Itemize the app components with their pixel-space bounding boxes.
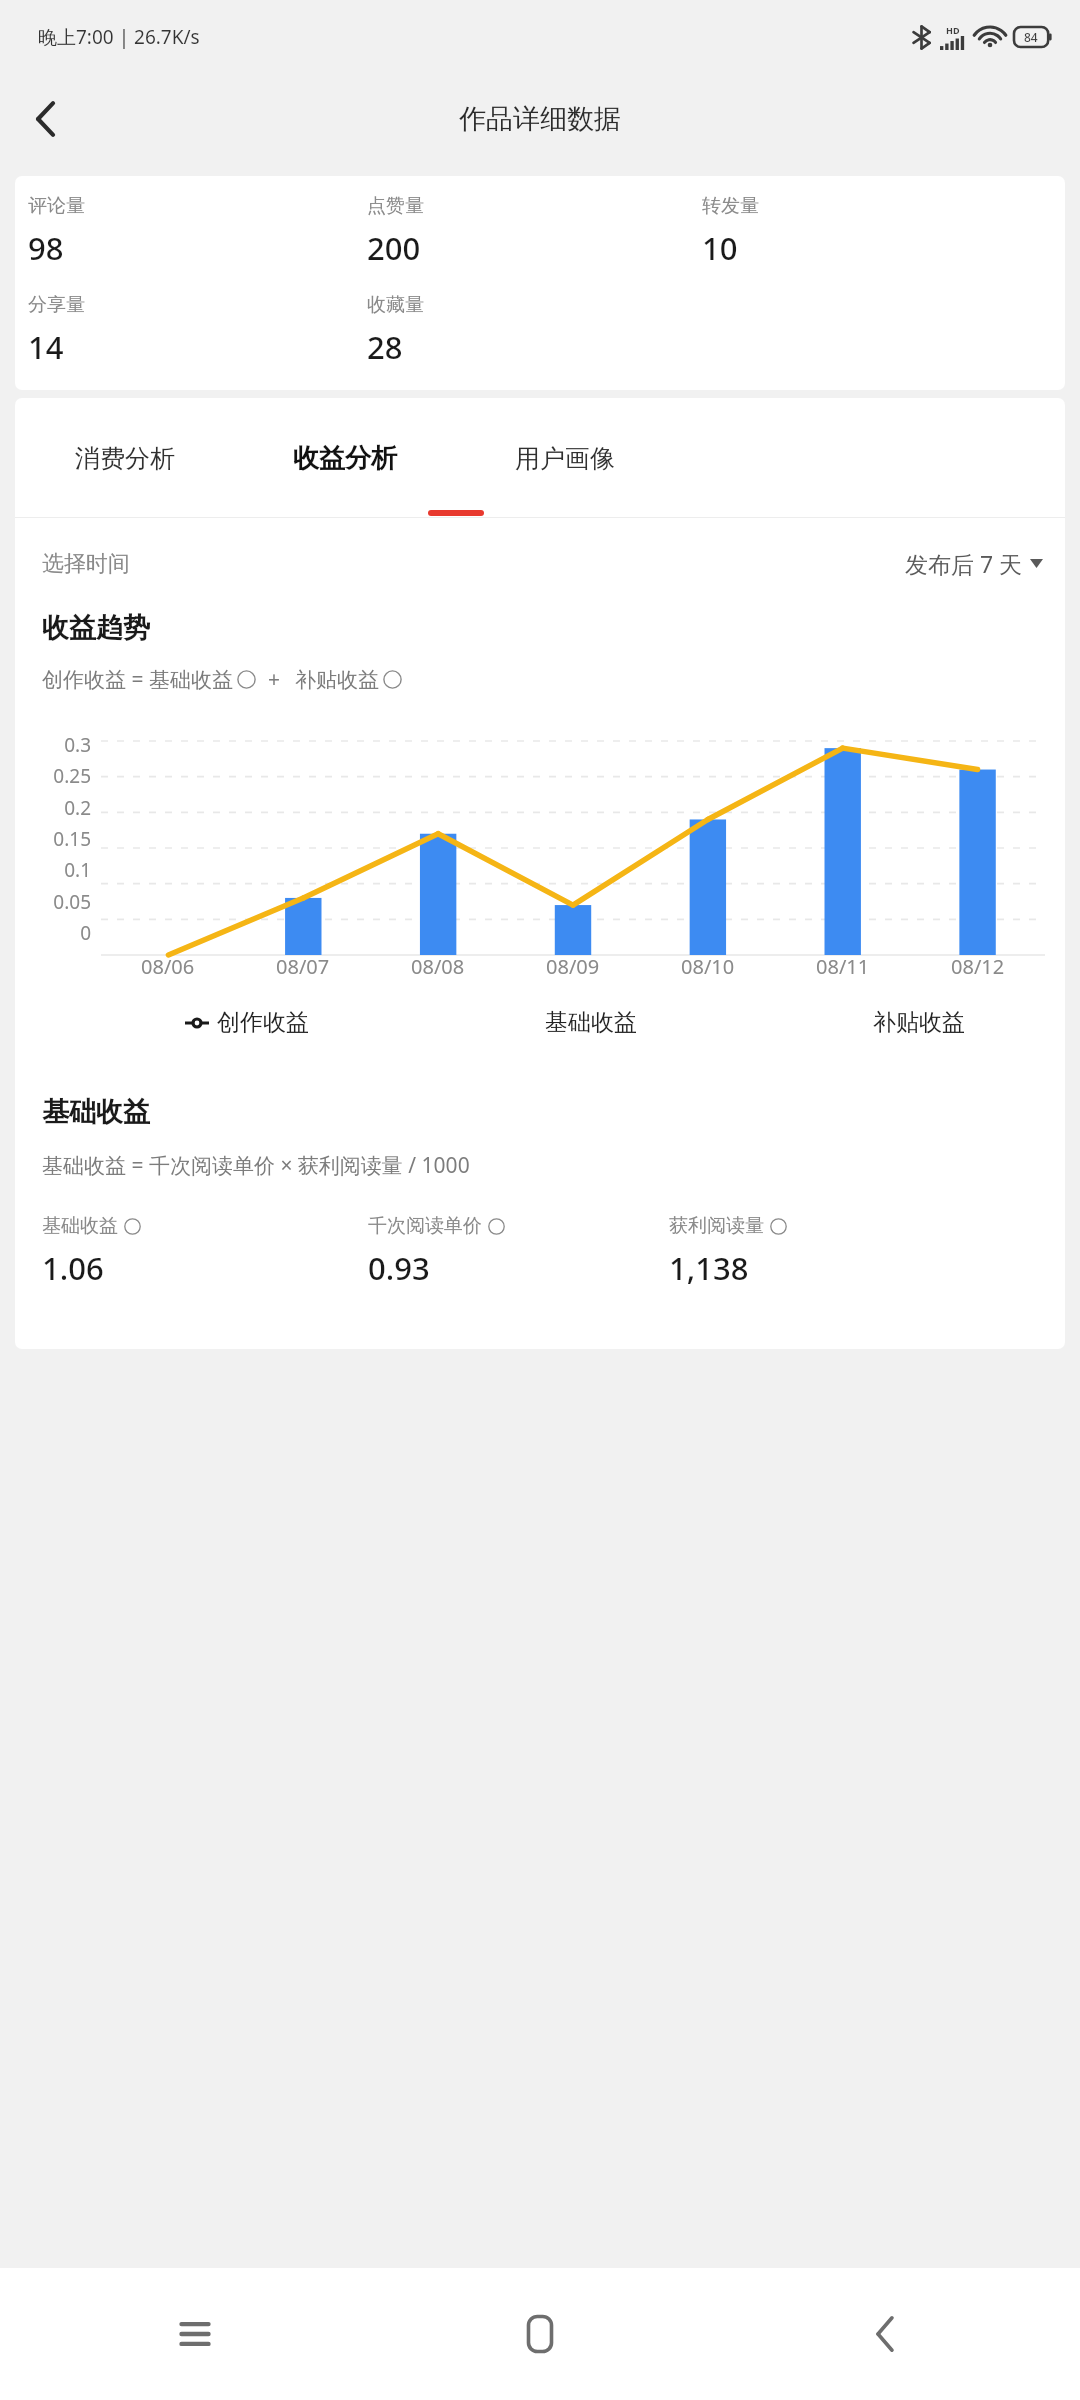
staticText: 创作收益 = 基础收益 (42, 665, 233, 694)
staticText: 0.15 (53, 826, 91, 852)
button[interactable]: 创作收益 (185, 1008, 309, 1037)
staticText: 用户画像 (515, 443, 615, 474)
staticText: 08/07 (276, 953, 330, 980)
staticText: 84 (1024, 29, 1038, 45)
button[interactable]: 基础收益 (545, 1008, 637, 1037)
staticText: 0.93 (368, 1247, 430, 1289)
staticText: 98 (28, 227, 64, 269)
staticText: 转发量 (702, 194, 759, 218)
staticText: 1.06 (42, 1247, 104, 1289)
staticText: 08/11 (816, 953, 870, 980)
staticText: + (268, 665, 281, 694)
staticText: 消费分析 (75, 443, 175, 474)
button[interactable]: 补贴收益 (873, 1008, 965, 1037)
staticText: 08/08 (411, 953, 465, 980)
staticText: 0 (80, 920, 91, 946)
staticText: 200 (367, 227, 421, 269)
staticText: 收藏量 (367, 293, 424, 317)
staticText: 0.05 (53, 889, 91, 915)
staticText: 14 (28, 326, 64, 368)
staticText: 创作收益 (217, 1008, 309, 1037)
staticText: 选择时间 (42, 550, 130, 578)
staticText: 晚上7:00 | 26.7K/s (38, 24, 200, 50)
button[interactable]: 消费分析 (15, 398, 235, 518)
staticText: 28 (367, 326, 403, 368)
staticText: 1,138 (669, 1247, 749, 1289)
staticText: 千次阅读单价 (368, 1214, 482, 1238)
button[interactable]: Back (840, 2289, 930, 2379)
staticText: 0.2 (64, 795, 91, 821)
staticText: 10 (702, 227, 738, 269)
staticText: 收益趋势 (42, 611, 150, 645)
staticText: 点赞量 (367, 194, 424, 218)
staticText: 08/10 (681, 953, 735, 980)
staticText: 分享量 (28, 293, 85, 317)
staticText: 发布后 7 天 (905, 548, 1023, 579)
staticText: 评论量 (28, 194, 85, 218)
staticText: HD (946, 24, 960, 36)
button[interactable]: 收益分析 (235, 398, 455, 518)
button[interactable]: 发布后 7 天 (905, 548, 1043, 579)
staticText: 08/09 (546, 953, 600, 980)
staticText: 08/12 (951, 953, 1005, 980)
staticText: 0.3 (64, 732, 91, 758)
staticText: 0.25 (53, 763, 91, 789)
staticText: 基础收益 (42, 1095, 150, 1129)
staticText: 获利阅读量 (669, 1214, 764, 1238)
staticText: 08/06 (141, 953, 195, 980)
staticText: 补贴收益 (295, 667, 379, 693)
staticText: 收益分析 (293, 442, 397, 475)
staticText: 基础收益 = 千次阅读单价 × 获利阅读量 / 1000 (42, 1151, 470, 1180)
button[interactable]: 用户画像 (455, 398, 675, 518)
staticText: 0.1 (64, 857, 91, 883)
button[interactable]: Recents (150, 2289, 240, 2379)
staticText: 基础收益 (42, 1214, 118, 1238)
button[interactable]: Back (14, 87, 78, 151)
button[interactable]: Home (495, 2289, 585, 2379)
staticText: 作品详细数据 (459, 102, 621, 136)
